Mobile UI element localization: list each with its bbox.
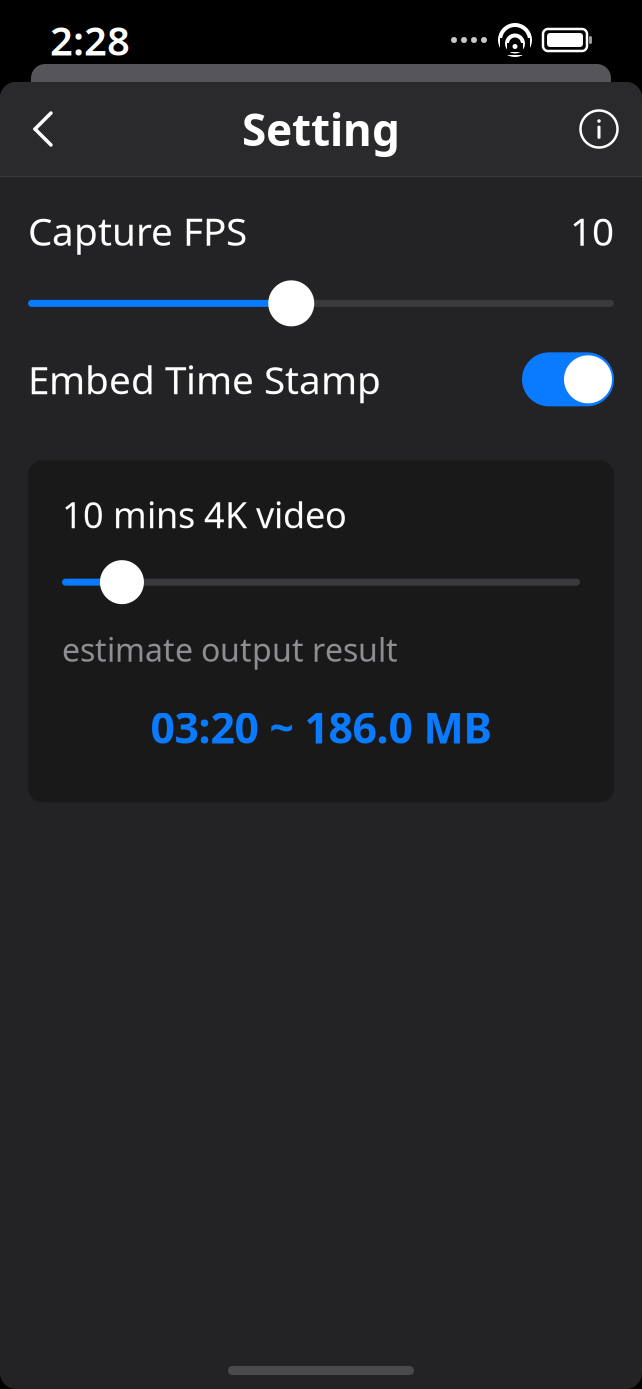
- staticText: 03:20 ~ 186.0 MB: [150, 699, 491, 755]
- staticText: 10: [570, 205, 614, 256]
- staticText: Capture FPS: [28, 205, 247, 256]
- button[interactable]: Information: [564, 94, 634, 164]
- button[interactable]: Embed Time Stamp: [522, 352, 614, 406]
- button[interactable]: Back: [8, 94, 78, 164]
- staticText: 10 mins 4K video: [62, 490, 347, 538]
- staticText: Embed Time Stamp: [28, 354, 381, 405]
- staticText: 2:28: [50, 13, 130, 66]
- staticText: estimate output result: [62, 628, 398, 671]
- staticText: Setting: [242, 100, 400, 158]
